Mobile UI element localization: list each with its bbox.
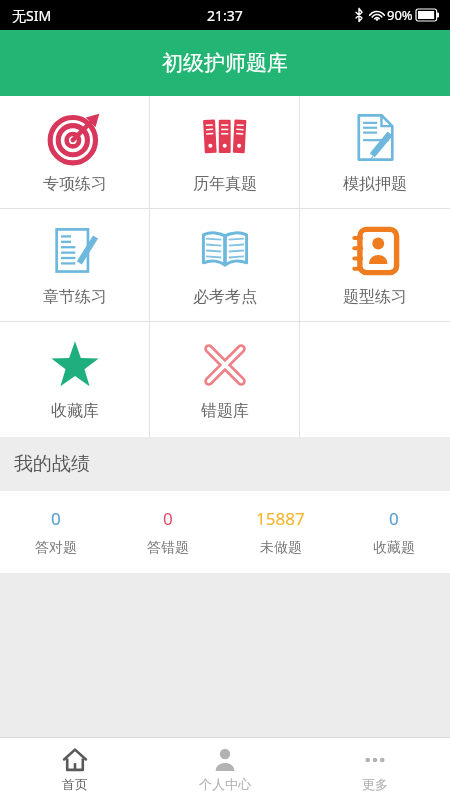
button[interactable]: 专项练习 (0, 96, 150, 208)
staticText: 0 (163, 507, 173, 530)
staticText: 首页 (62, 776, 88, 792)
button[interactable]: 章节练习 (0, 209, 150, 321)
button[interactable]: 错题库 (150, 322, 300, 437)
staticText: 答对题 (35, 539, 77, 557)
staticText: 历年真题 (193, 174, 257, 194)
button[interactable]: 0 (112, 491, 224, 573)
staticText: 0 (389, 507, 399, 530)
staticText: 个人中心 (199, 776, 251, 792)
button[interactable]: 15887 (224, 491, 337, 573)
staticText: 无SIM (12, 6, 52, 25)
button[interactable]: 必考考点 (150, 209, 300, 321)
button[interactable]: 历年真题 (150, 96, 300, 208)
staticText: 更多 (362, 776, 388, 792)
staticText: 90% (387, 6, 413, 24)
staticText: 收藏题 (373, 539, 415, 557)
staticText: 初级护师题库 (162, 50, 288, 76)
button[interactable]: 收藏库 (0, 322, 150, 437)
button[interactable]: 首页 (0, 738, 150, 800)
staticText: 收藏库 (51, 401, 99, 421)
button[interactable]: 模拟押题 (300, 96, 450, 208)
button[interactable]: 更多 (300, 738, 450, 800)
staticText: 错题库 (201, 401, 249, 421)
staticText: 答错题 (147, 539, 189, 557)
button[interactable]: 题型练习 (300, 209, 450, 321)
staticText: 0 (51, 507, 61, 530)
button[interactable]: 0 (0, 491, 112, 573)
button[interactable]: 0 (337, 491, 450, 573)
staticText: 题型练习 (343, 287, 407, 307)
staticText: 必考考点 (193, 287, 257, 307)
staticText: 章节练习 (43, 287, 107, 307)
staticText: 21:37 (207, 6, 243, 25)
staticText: 模拟押题 (343, 174, 407, 194)
staticText: 未做题 (260, 539, 302, 557)
staticText: 我的战绩 (14, 452, 90, 476)
button[interactable]: 个人中心 (150, 738, 300, 800)
staticText: 15887 (256, 507, 305, 530)
staticText: 专项练习 (43, 174, 107, 194)
